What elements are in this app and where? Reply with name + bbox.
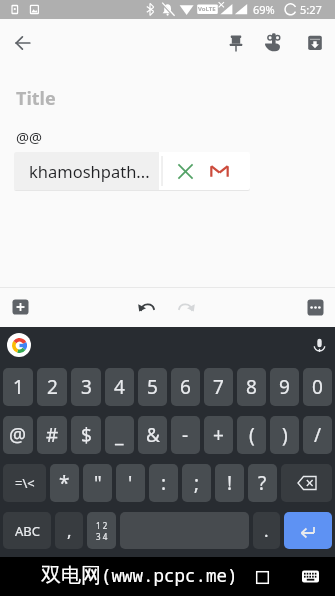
button[interactable]: Switch keyboard <box>291 558 329 596</box>
button[interactable]: + <box>204 416 233 454</box>
staticText: + <box>213 422 224 448</box>
button[interactable]: Home <box>243 558 281 596</box>
staticText: 3 4 <box>96 531 108 542</box>
button[interactable]: , <box>55 512 83 549</box>
button[interactable]: =\< <box>3 464 46 502</box>
staticText: VoLTE <box>198 5 216 13</box>
staticText: : <box>161 470 167 496</box>
button[interactable]: . <box>253 512 280 549</box>
button[interactable]: 7 <box>204 368 233 406</box>
button[interactable]: 3 <box>71 368 101 406</box>
button[interactable]: " <box>83 464 112 502</box>
staticText: (www.pcpc.me) <box>101 563 238 587</box>
button[interactable]: Open in Gmail <box>201 153 237 189</box>
staticText: 9 <box>279 374 290 400</box>
staticText: ! <box>227 470 233 496</box>
button[interactable]: Enter <box>284 512 332 549</box>
staticText: 0 <box>312 374 323 400</box>
button[interactable]: 8 <box>237 368 266 406</box>
staticText: / <box>314 422 322 448</box>
button[interactable]: Redo <box>169 290 203 324</box>
button[interactable]: ! <box>215 464 244 502</box>
button[interactable]: ) <box>270 416 299 454</box>
staticText: , <box>67 519 72 542</box>
staticText: ( <box>249 422 255 448</box>
staticText: 5 <box>147 374 158 400</box>
staticText: Title <box>16 86 56 111</box>
staticText: . <box>264 519 269 542</box>
button[interactable]: - <box>171 416 200 454</box>
button[interactable]: 0 <box>303 368 332 406</box>
button[interactable]: & <box>138 416 167 454</box>
staticText: 6 <box>180 374 191 400</box>
staticText: ) <box>282 422 288 448</box>
staticText: * <box>59 470 70 496</box>
button[interactable]: ; <box>182 464 211 502</box>
staticText: =\< <box>15 474 35 492</box>
staticText: ? <box>258 470 267 496</box>
button[interactable]: 6 <box>171 368 200 406</box>
staticText: @@ <box>16 127 43 147</box>
staticText: & <box>146 422 160 448</box>
staticText: @ <box>9 422 27 448</box>
button[interactable]: Reminder <box>255 25 291 61</box>
staticText: 双电网 <box>41 563 101 588</box>
button[interactable]: Archive <box>297 25 333 61</box>
button[interactable]: 9 <box>270 368 299 406</box>
staticText: - <box>182 422 189 448</box>
button[interactable]: 5 <box>138 368 167 406</box>
staticText: 1 2 <box>96 520 108 531</box>
staticText: 8 <box>246 374 257 400</box>
button[interactable]: 1 <box>3 368 33 406</box>
button[interactable]: 2 <box>37 368 67 406</box>
staticText: 7 <box>213 374 224 400</box>
button[interactable]: More options <box>299 291 331 323</box>
button[interactable]: Undo <box>130 290 164 324</box>
button[interactable]: : <box>149 464 178 502</box>
button[interactable]: ' <box>116 464 145 502</box>
button[interactable]: ? <box>248 464 277 502</box>
staticText: 2 <box>47 374 58 400</box>
staticText: 4 <box>114 374 125 400</box>
staticText: 69% <box>253 2 275 17</box>
staticText: $ <box>81 422 92 448</box>
button[interactable]: Back <box>5 25 41 61</box>
button[interactable]: # <box>37 416 67 454</box>
staticText: ABC <box>15 522 40 540</box>
button[interactable]: Add <box>4 291 36 323</box>
button[interactable]: ( <box>237 416 266 454</box>
button[interactable]: _ <box>105 416 134 454</box>
staticText: khamoshpath... <box>29 160 150 182</box>
button[interactable]: @ <box>3 416 33 454</box>
button[interactable]: 4 <box>105 368 134 406</box>
button[interactable]: Google search <box>7 333 31 357</box>
button[interactable]: / <box>303 416 332 454</box>
staticText: _ <box>115 422 124 448</box>
staticText: # <box>46 422 59 448</box>
staticText: 3 <box>81 374 92 400</box>
staticText: " <box>94 470 102 496</box>
button[interactable]: Numbers <box>87 512 116 549</box>
button[interactable]: ABC <box>3 512 51 549</box>
staticText: ' <box>128 470 133 496</box>
button[interactable]: khamoshpath... <box>14 152 159 190</box>
button[interactable]: Pin note <box>218 25 254 61</box>
button[interactable]: $ <box>71 416 101 454</box>
staticText: ; <box>194 470 200 496</box>
staticText: 5:27 <box>300 2 322 17</box>
button[interactable]: Dismiss suggestion <box>167 153 203 189</box>
button[interactable]: * <box>50 464 79 502</box>
button[interactable]: Voice input <box>307 333 331 357</box>
staticText: 1 <box>13 374 24 400</box>
button[interactable]: Backspace <box>281 464 332 502</box>
